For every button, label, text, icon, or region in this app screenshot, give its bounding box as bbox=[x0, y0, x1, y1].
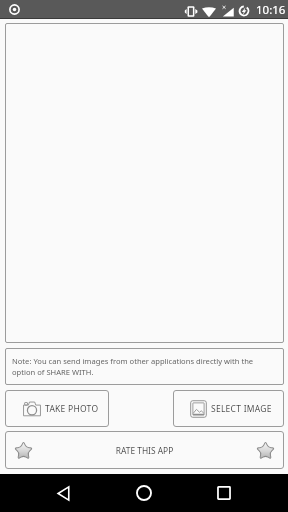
staticText: 10:16 bbox=[256, 2, 286, 18]
button[interactable]: TAKE PHOTO bbox=[5, 390, 109, 427]
button[interactable]: Recent apps bbox=[207, 476, 241, 510]
staticText: TAKE PHOTO bbox=[45, 403, 99, 415]
button[interactable]: Home bbox=[127, 476, 161, 510]
staticText: Note: You can send images from other app… bbox=[12, 356, 258, 377]
button[interactable]: Back bbox=[47, 476, 81, 510]
staticText: RATE THIS APP bbox=[34, 445, 255, 456]
button[interactable]: RATE THIS APP bbox=[5, 431, 284, 469]
staticText: SELECT IMAGE bbox=[211, 403, 272, 415]
button[interactable]: SELECT IMAGE bbox=[173, 390, 284, 427]
